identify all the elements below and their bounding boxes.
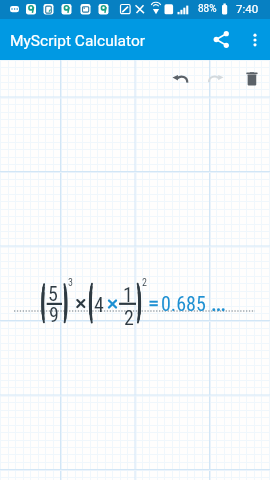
staticText: MyScript Calculator [10,32,145,50]
staticText: 2 [142,277,147,289]
button[interactable]: More options [240,19,270,60]
staticText: 1 [123,283,133,306]
button[interactable]: Undo [164,62,197,94]
staticText: 0.685 [161,292,206,315]
staticText: 9 [49,303,59,326]
staticText: 2 [124,306,134,329]
staticText: 4 [94,293,104,316]
button[interactable]: Share [202,19,240,60]
staticText: 5 [48,282,58,305]
staticText: 7:40 [236,2,259,15]
button[interactable]: Delete [235,62,268,94]
button[interactable]: Redo [199,62,232,94]
staticText: 3 [68,277,73,289]
staticText: 88% [198,3,217,15]
